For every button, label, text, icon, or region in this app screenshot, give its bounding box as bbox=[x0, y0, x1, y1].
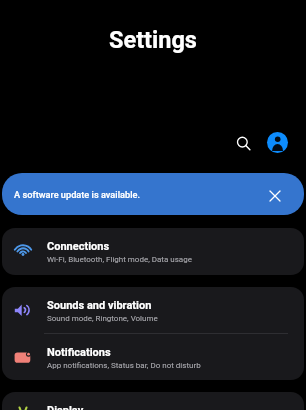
button[interactable]: Notifications bbox=[2, 334, 304, 380]
button[interactable]: A software update is available. bbox=[2, 173, 304, 215]
staticText: Notifications bbox=[47, 346, 111, 359]
staticText: Settings bbox=[109, 26, 197, 54]
staticText: Sounds and vibration bbox=[47, 299, 152, 312]
staticText: App notifications, Status bar, Do not di… bbox=[47, 361, 201, 370]
staticText: Sound mode, Ringtone, Volume bbox=[47, 314, 158, 323]
button[interactable]: Dismiss bbox=[266, 187, 284, 205]
button[interactable]: Display bbox=[2, 392, 304, 410]
button[interactable]: Sounds and vibration bbox=[2, 287, 304, 334]
staticText: Display bbox=[47, 404, 84, 410]
button[interactable]: Connections bbox=[2, 228, 304, 275]
staticText: Wi-Fi, Bluetooth, Flight mode, Data usag… bbox=[47, 255, 192, 264]
button[interactable]: Search bbox=[228, 127, 258, 157]
button[interactable]: Account bbox=[262, 127, 292, 157]
staticText: Connections bbox=[47, 240, 110, 253]
staticText: A software update is available. bbox=[14, 189, 141, 200]
